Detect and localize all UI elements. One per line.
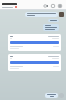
button[interactable]: Call — [49, 2, 56, 9]
button[interactable]: Video call — [42, 2, 49, 9]
button[interactable] — [45, 93, 58, 98]
button[interactable] — [48, 19, 59, 22]
button[interactable] — [10, 61, 59, 64]
button[interactable] — [8, 54, 61, 71]
button[interactable] — [25, 12, 58, 17]
button[interactable] — [2, 3, 42, 8]
button[interactable] — [43, 24, 59, 31]
button[interactable] — [8, 34, 61, 51]
button[interactable]: Sender avatar — [59, 12, 64, 17]
button[interactable]: More options — [56, 2, 63, 9]
button[interactable] — [10, 41, 59, 44]
